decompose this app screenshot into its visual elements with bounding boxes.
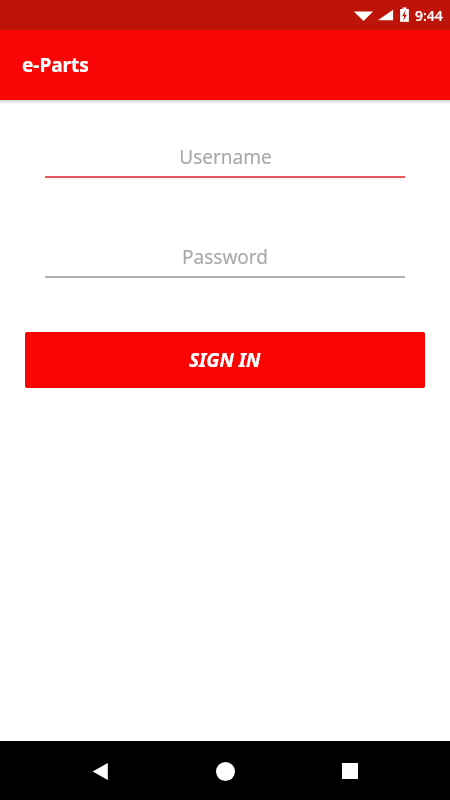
staticText: Username: [179, 144, 272, 170]
button[interactable]: SIGN IN: [25, 332, 425, 388]
button[interactable]: Back: [82, 753, 118, 789]
button[interactable]: Password: [45, 242, 405, 278]
button[interactable]: Username: [45, 142, 405, 178]
staticText: e-Parts: [22, 52, 89, 78]
button[interactable]: Home: [207, 753, 243, 789]
staticText: 9:44: [415, 6, 443, 25]
staticText: Password: [182, 244, 268, 270]
staticText: SIGN IN: [189, 347, 261, 373]
button[interactable]: Recents: [332, 753, 368, 789]
